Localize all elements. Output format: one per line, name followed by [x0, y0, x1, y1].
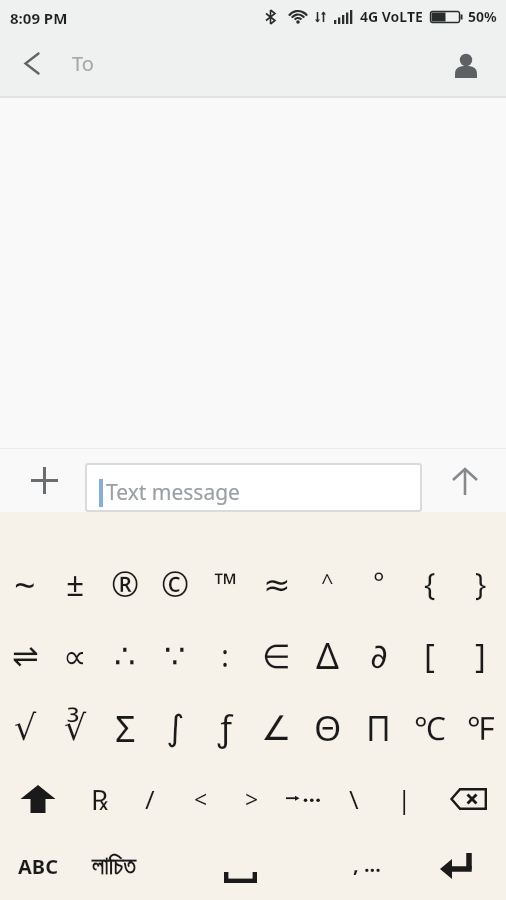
staticText: ±	[66, 562, 85, 606]
staticText: ©	[161, 561, 190, 607]
button[interactable]: ±	[50, 548, 100, 619]
staticText: ℉	[467, 706, 495, 750]
staticText: 8:09 PM	[10, 8, 68, 28]
button[interactable]: {	[404, 548, 455, 619]
staticText: :	[221, 635, 230, 676]
button[interactable]	[0, 764, 75, 833]
staticText: \	[349, 781, 359, 816]
button[interactable]	[442, 458, 488, 504]
staticText: Δ	[316, 631, 340, 680]
button[interactable]: ∂	[353, 619, 404, 692]
staticText: /	[145, 781, 155, 816]
button[interactable]: ∵	[150, 619, 200, 692]
button[interactable]: °	[353, 548, 404, 619]
staticText: ℞	[91, 780, 109, 818]
button[interactable]: ∝	[50, 619, 100, 692]
button[interactable]: Π	[353, 692, 404, 764]
button[interactable]: ℃	[404, 692, 455, 764]
button[interactable]: ®	[100, 548, 150, 619]
staticText: °	[373, 563, 385, 600]
button[interactable]: ABC	[0, 833, 76, 900]
button[interactable]: ©	[150, 548, 200, 619]
button[interactable]: ∛	[50, 692, 100, 764]
staticText: ∛	[64, 708, 87, 749]
staticText: ^	[321, 566, 334, 596]
button[interactable]	[152, 833, 329, 900]
button[interactable]: ƒ	[200, 692, 251, 764]
staticText: |	[397, 781, 412, 816]
button[interactable]: >	[226, 764, 277, 833]
button[interactable]: Δ	[302, 619, 353, 692]
button[interactable]: ∫	[150, 692, 200, 764]
staticText: ~	[14, 558, 36, 610]
staticText: ®	[111, 561, 140, 607]
button[interactable]	[22, 458, 66, 502]
staticText: }	[475, 563, 487, 604]
button[interactable]	[10, 41, 54, 85]
button[interactable]: ⇌	[0, 619, 50, 692]
staticText: ∝	[63, 637, 87, 675]
staticText: <	[194, 783, 208, 814]
button[interactable]: ∴	[100, 619, 150, 692]
staticText: {	[424, 563, 436, 604]
button[interactable]	[430, 764, 506, 833]
button[interactable]	[405, 833, 506, 900]
staticText: √	[14, 708, 37, 749]
button[interactable]: Θ	[302, 692, 353, 764]
button[interactable]: :	[200, 619, 251, 692]
button[interactable]: /	[125, 764, 175, 833]
button[interactable]: Σ	[100, 692, 150, 764]
button[interactable]: ™	[200, 548, 251, 619]
staticText: , ...	[353, 851, 381, 878]
button[interactable]: ∈	[251, 619, 302, 692]
button[interactable]	[277, 764, 328, 833]
button[interactable]: \	[328, 764, 379, 833]
staticText: Text message	[106, 478, 240, 507]
button[interactable]: ^	[302, 548, 353, 619]
staticText: লাচিত	[92, 855, 137, 879]
staticText: ℃	[414, 706, 446, 750]
staticText: ABC	[18, 853, 58, 880]
staticText: To	[72, 50, 94, 77]
button[interactable]: ∠	[251, 692, 302, 764]
staticText: ∫	[166, 708, 185, 749]
staticText: ∵	[164, 636, 186, 676]
staticText: ∂	[370, 636, 388, 676]
staticText: Π	[366, 705, 391, 751]
staticText: ∠	[261, 708, 292, 748]
staticText: 4G VoLTE	[360, 7, 423, 26]
button[interactable]: ℉	[455, 692, 506, 764]
staticText: ∴	[114, 636, 136, 676]
button[interactable]: ~	[0, 548, 50, 619]
button[interactable]: }	[455, 548, 506, 619]
button[interactable]: |	[379, 764, 430, 833]
staticText: ]	[475, 633, 486, 678]
staticText: >	[245, 783, 259, 814]
button[interactable]: [	[404, 619, 455, 692]
staticText: ™	[214, 563, 238, 604]
staticText: Σ	[115, 704, 136, 753]
staticText: [	[424, 633, 435, 678]
button[interactable]: ]	[455, 619, 506, 692]
button[interactable]: Text message	[85, 463, 422, 512]
button[interactable]: ≈	[251, 548, 302, 619]
button[interactable]: ℞	[75, 764, 125, 833]
button[interactable]	[450, 49, 482, 81]
staticText: ⇌	[12, 637, 39, 674]
staticText: Θ	[314, 704, 342, 752]
button[interactable]: লাচিত	[76, 833, 152, 900]
staticText: ≈	[263, 565, 291, 603]
button[interactable]: , ...	[329, 833, 405, 900]
staticText: 50%	[468, 7, 497, 26]
button[interactable]: <	[175, 764, 226, 833]
staticText: ƒ	[218, 705, 233, 751]
button[interactable]: √	[0, 692, 50, 764]
staticText: ∈	[262, 637, 291, 675]
